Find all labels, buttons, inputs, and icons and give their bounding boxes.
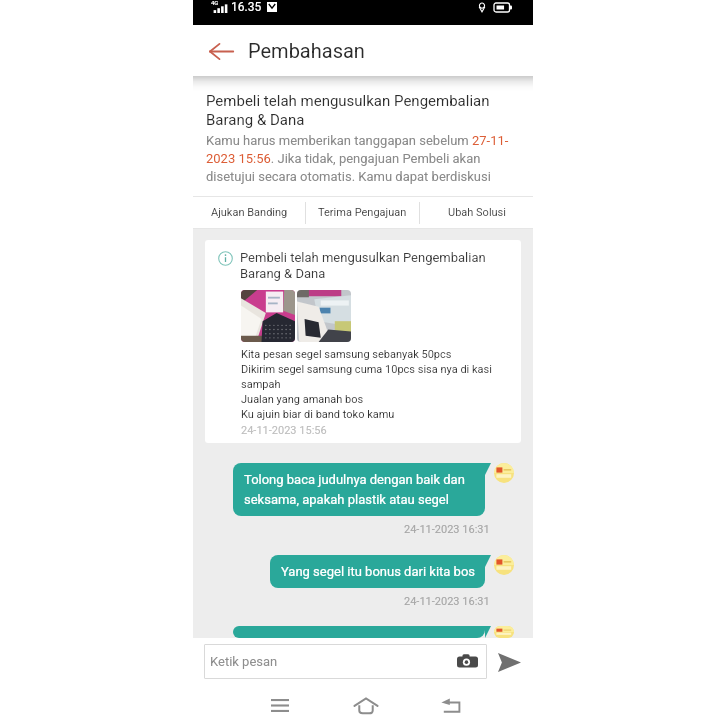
staticText: 24-11-2023 16:31 bbox=[404, 595, 490, 608]
staticText: Pembeli telah mengusulkan Pengembalian B… bbox=[240, 250, 511, 281]
button[interactable]: Ketik pesan bbox=[204, 644, 487, 679]
staticText: 4G bbox=[211, 0, 219, 6]
button[interactable]: Back bbox=[203, 33, 239, 69]
staticText: Kamu harus memberikan tanggapan sebelum … bbox=[206, 133, 526, 184]
button[interactable]: Yang segel itu bonus dari kita bos bbox=[270, 555, 485, 588]
staticText: Ketik pesan bbox=[210, 654, 278, 669]
staticText: Pembeli telah mengusulkan Pengembalian B… bbox=[206, 92, 526, 129]
staticText: Ubah Solusi bbox=[448, 206, 506, 219]
button[interactable]: Terima Pengajuan bbox=[306, 197, 419, 228]
staticText: Tolong baca judulnya dengan baik dan sek… bbox=[244, 472, 465, 507]
button[interactable] bbox=[233, 626, 485, 638]
button[interactable]: Ubah Solusi bbox=[420, 197, 533, 228]
button[interactable]: Avatar bbox=[494, 555, 514, 575]
button[interactable]: Attached photo bbox=[241, 290, 295, 342]
button[interactable]: Ajukan Banding bbox=[193, 197, 305, 228]
staticText: Pembahasan bbox=[248, 39, 365, 62]
button[interactable]: Recent apps bbox=[257, 685, 302, 726]
staticText: 24-11-2023 16:31 bbox=[404, 523, 490, 536]
button[interactable]: Home bbox=[343, 685, 388, 726]
staticText: 24-11-2023 15:56 bbox=[241, 424, 327, 437]
staticText: Ajukan Banding bbox=[211, 206, 288, 219]
staticText: 16.35 bbox=[231, 0, 262, 14]
staticText: Terima Pengajuan bbox=[318, 206, 407, 219]
button[interactable]: Tolong baca judulnya dengan baik dan sek… bbox=[233, 463, 485, 516]
button[interactable]: Avatar bbox=[494, 463, 514, 483]
button[interactable]: Send bbox=[496, 649, 522, 675]
staticText: Yang segel itu bonus dari kita bos bbox=[281, 564, 476, 579]
button[interactable]: Avatar bbox=[494, 626, 514, 638]
button[interactable]: Back bbox=[428, 685, 473, 726]
button[interactable]: Camera bbox=[457, 651, 478, 672]
button[interactable]: Attached photo bbox=[297, 290, 351, 342]
staticText: Kita pesan segel samsung sebanyak 50pcs … bbox=[241, 348, 511, 421]
